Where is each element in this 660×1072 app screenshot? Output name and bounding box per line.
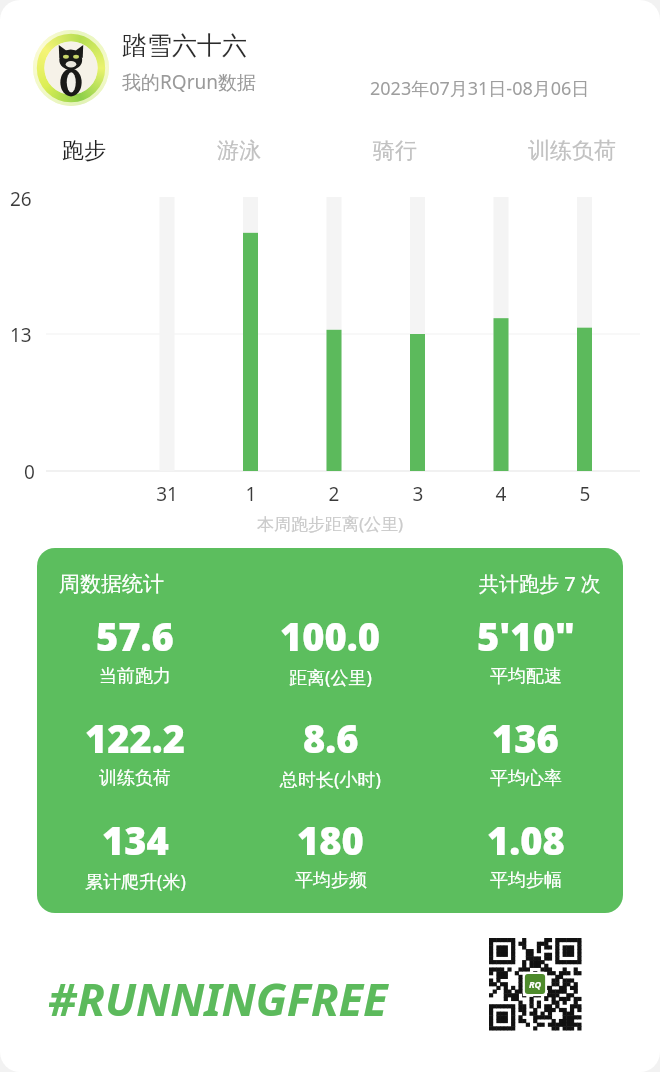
staticText: 骑行 (373, 137, 417, 165)
staticText: 0 (24, 459, 35, 485)
staticText: 31 (147, 481, 187, 507)
button[interactable]: 跑步 (58, 133, 110, 169)
staticText: 周数据统计 (59, 571, 164, 597)
staticText: 训练负荷 (99, 767, 171, 790)
staticText: 跑步 (62, 137, 106, 165)
staticText: 1 (231, 481, 271, 507)
staticText: 5 (565, 481, 605, 507)
staticText: 总时长(小时) (280, 767, 381, 792)
staticText: 游泳 (217, 137, 261, 165)
staticText: 26 (10, 186, 32, 212)
staticText: 累计爬升(米) (85, 869, 186, 894)
staticText: 2 (314, 481, 354, 507)
staticText: RQ (529, 978, 542, 990)
staticText: 4 (481, 481, 521, 507)
staticText: 训练负荷 (528, 137, 616, 165)
button[interactable]: 训练负荷 (524, 133, 620, 169)
staticText: 136 (492, 712, 559, 764)
staticText: 当前跑力 (99, 665, 171, 688)
staticText: 13 (10, 322, 32, 348)
button[interactable]: 周数据统计 (37, 548, 623, 913)
staticText: 平均步幅 (490, 869, 562, 892)
staticText: 2023年07月31日-08月06日 (370, 76, 590, 101)
staticText: 134 (102, 814, 169, 866)
button[interactable]: 骑行 (369, 133, 421, 169)
staticText: 8.6 (303, 712, 359, 764)
staticText: 平均步频 (295, 869, 367, 892)
staticText: 122.2 (85, 712, 186, 764)
staticText: 1.08 (487, 814, 565, 866)
staticText: 180 (297, 814, 364, 866)
staticText: 距离(公里) (289, 665, 372, 690)
staticText: 共计跑步 7 次 (479, 570, 601, 597)
staticText: 平均配速 (490, 665, 562, 688)
staticText: #RUNNINGFREE (48, 968, 388, 1029)
staticText: 本周跑步距离(公里) (0, 512, 660, 535)
staticText: 5'10" (477, 610, 575, 662)
button[interactable]: 游泳 (213, 133, 265, 169)
staticText: 57.6 (96, 610, 174, 662)
staticText: 平均心率 (490, 767, 562, 790)
button[interactable]: QR code (489, 938, 581, 1030)
staticText: 踏雪六十六 (122, 30, 247, 61)
staticText: 3 (398, 481, 438, 507)
staticText: 100.0 (280, 610, 381, 662)
staticText: 我的RQrun数据 (122, 69, 256, 95)
